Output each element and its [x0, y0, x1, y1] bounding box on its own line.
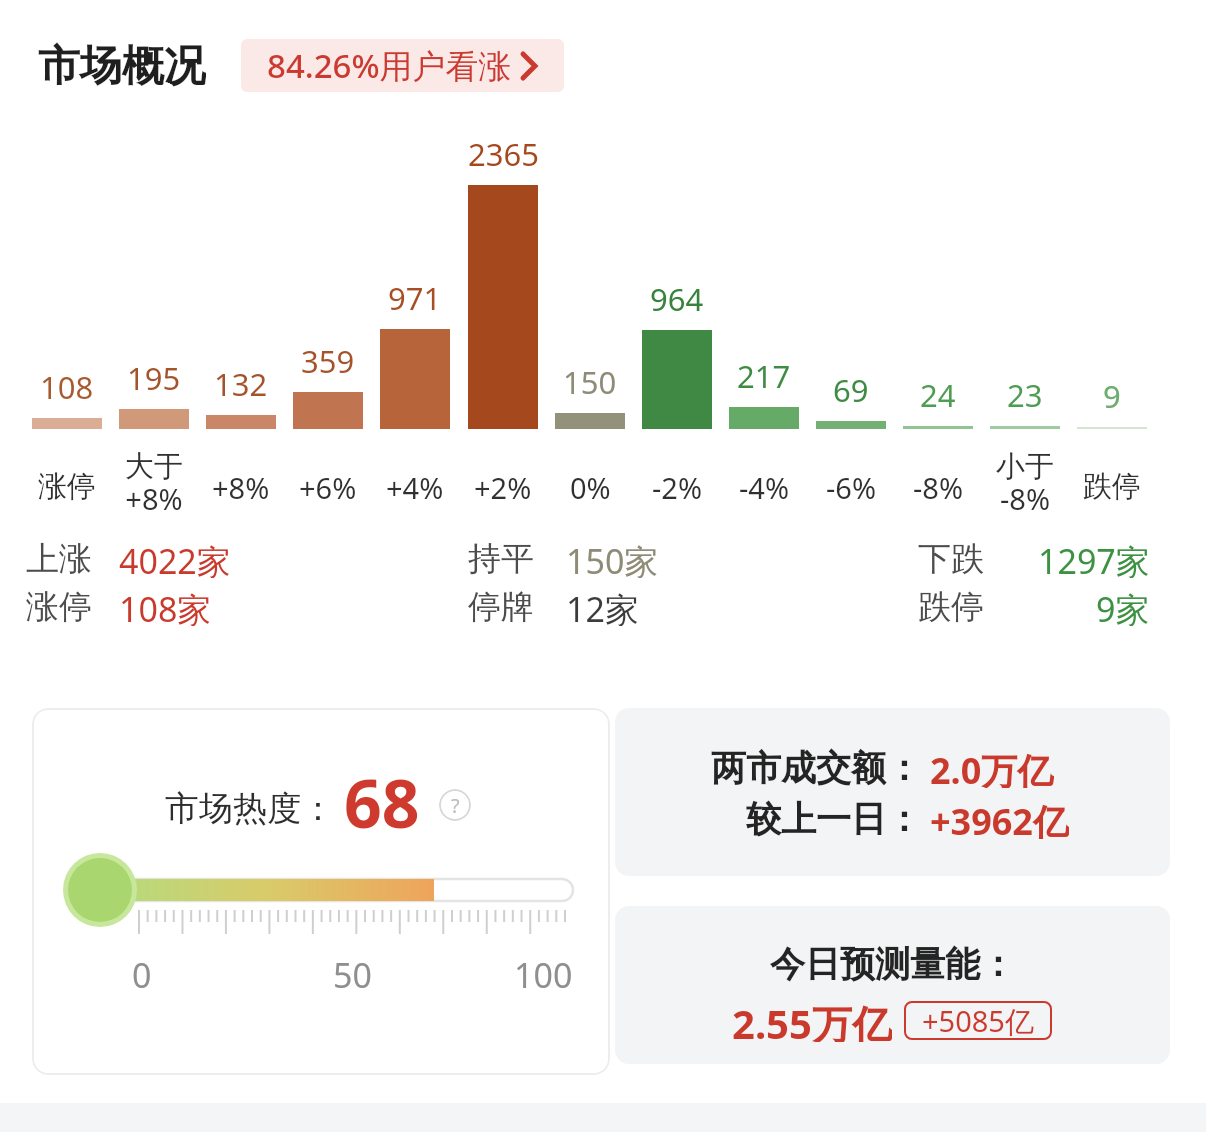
staticText: 100 [514, 952, 573, 992]
staticText: 上涨 [26, 538, 92, 578]
staticText: +3962亿 [930, 797, 1069, 839]
staticText: 23 [1007, 374, 1043, 412]
staticText: 150家 [566, 538, 659, 578]
staticText: +2% [474, 468, 532, 504]
button[interactable]: 市场热度： [32, 708, 610, 1075]
staticText: 2.55万亿 [732, 996, 892, 1042]
staticText: 大于 +8% [125, 448, 183, 514]
staticText: ? [451, 792, 460, 819]
staticText: +5085亿 [922, 1001, 1034, 1040]
staticText: 24 [920, 374, 956, 412]
staticText: 涨停 [26, 586, 92, 626]
staticText: +8% [212, 468, 270, 504]
staticText: 停牌 [468, 586, 534, 626]
staticText: 两市成交额： [711, 746, 921, 788]
staticText: -2% [652, 468, 703, 504]
staticText: -8% [913, 468, 964, 504]
staticText: 195 [127, 357, 181, 395]
staticText: 150 [563, 361, 617, 399]
staticText: 市场热度： [165, 787, 335, 827]
staticText: 今日预测量能： [770, 942, 1015, 984]
staticText: 971 [388, 277, 442, 315]
staticText: 359 [301, 340, 355, 378]
staticText: 217 [737, 355, 791, 393]
staticText: +6% [299, 468, 357, 504]
button[interactable]: 两市成交额： [615, 708, 1170, 876]
staticText: 69 [833, 369, 869, 407]
staticText: 964 [650, 278, 704, 316]
button[interactable]: 84.26%用户看涨 [241, 39, 564, 92]
staticText: 12家 [566, 586, 639, 626]
staticText: 9 [1103, 375, 1121, 413]
staticText: -4% [739, 468, 790, 504]
staticText: 84.26%用户看涨 [267, 43, 512, 88]
staticText: 1297家 [1038, 538, 1150, 578]
staticText: 0% [570, 468, 611, 504]
staticText: 108家 [119, 586, 212, 626]
staticText: 0 [132, 952, 152, 992]
staticText: 下跌 [918, 538, 984, 578]
staticText: 4022家 [119, 538, 231, 578]
staticText: 50 [333, 952, 372, 992]
staticText: 较上一日： [746, 797, 921, 839]
staticText: 68 [344, 757, 420, 847]
staticText: 涨停 [38, 468, 96, 504]
button[interactable]: 今日预测量能： [615, 906, 1170, 1064]
staticText: +4% [386, 468, 444, 504]
staticText: 2365 [468, 133, 539, 171]
staticText: 9家 [1096, 586, 1150, 626]
button[interactable]: ? [439, 789, 471, 821]
staticText: 132 [214, 363, 268, 401]
staticText: 跌停 [918, 586, 984, 626]
staticText: 持平 [468, 538, 534, 578]
staticText: 市场概况 [38, 40, 206, 88]
staticText: -6% [826, 468, 877, 504]
staticText: 2.0万亿 [930, 746, 1054, 788]
staticText: 跌停 [1083, 468, 1141, 504]
staticText: 108 [40, 366, 94, 404]
staticText: 小于 -8% [996, 448, 1054, 514]
